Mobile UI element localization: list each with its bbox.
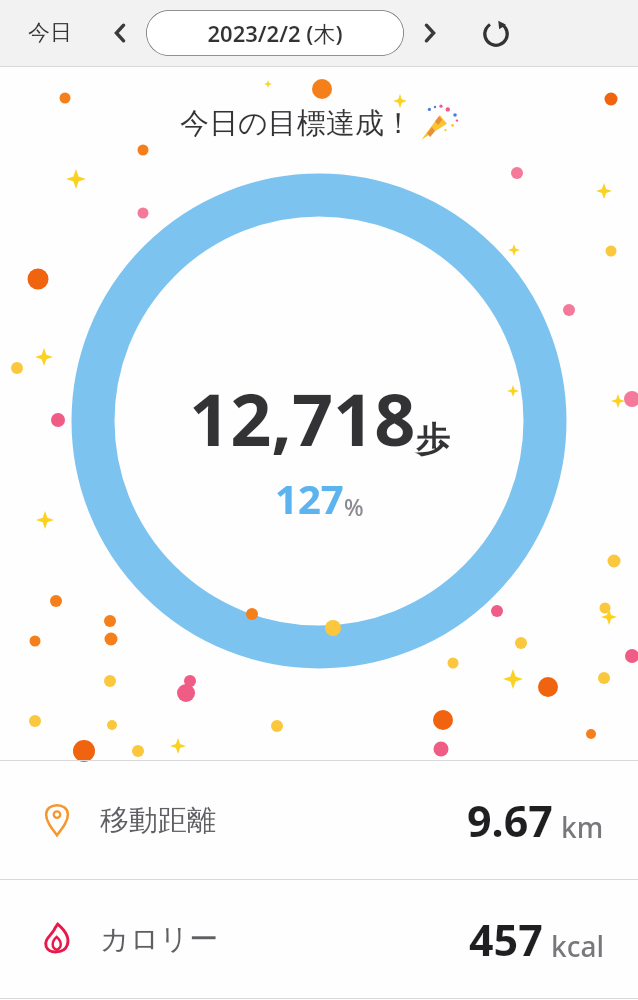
button[interactable]: カロリー bbox=[0, 880, 638, 998]
button[interactable]: Refresh bbox=[476, 13, 516, 53]
staticText: 9.67 bbox=[467, 791, 553, 850]
staticText: 今日 bbox=[28, 19, 72, 47]
staticText: カロリー bbox=[100, 921, 219, 958]
button[interactable]: Previous day bbox=[102, 15, 138, 51]
button[interactable]: 2023/2/2 (木) bbox=[146, 10, 404, 56]
button[interactable]: 移動距離 bbox=[0, 761, 638, 879]
staticText: 127 bbox=[275, 471, 344, 525]
staticText: 457 bbox=[469, 910, 543, 969]
staticText: km bbox=[561, 808, 604, 846]
staticText: 12,718 bbox=[189, 369, 416, 467]
staticText: kcal bbox=[551, 927, 604, 965]
button[interactable]: Next day bbox=[412, 15, 448, 51]
staticText: 今日の目標達成！ bbox=[180, 105, 413, 142]
button[interactable]: 今日 bbox=[14, 11, 86, 55]
staticText: 2023/2/2 (木) bbox=[207, 18, 343, 48]
staticText: % bbox=[344, 491, 364, 522]
staticText: 移動距離 bbox=[100, 802, 216, 839]
staticText: 歩 bbox=[416, 418, 450, 461]
